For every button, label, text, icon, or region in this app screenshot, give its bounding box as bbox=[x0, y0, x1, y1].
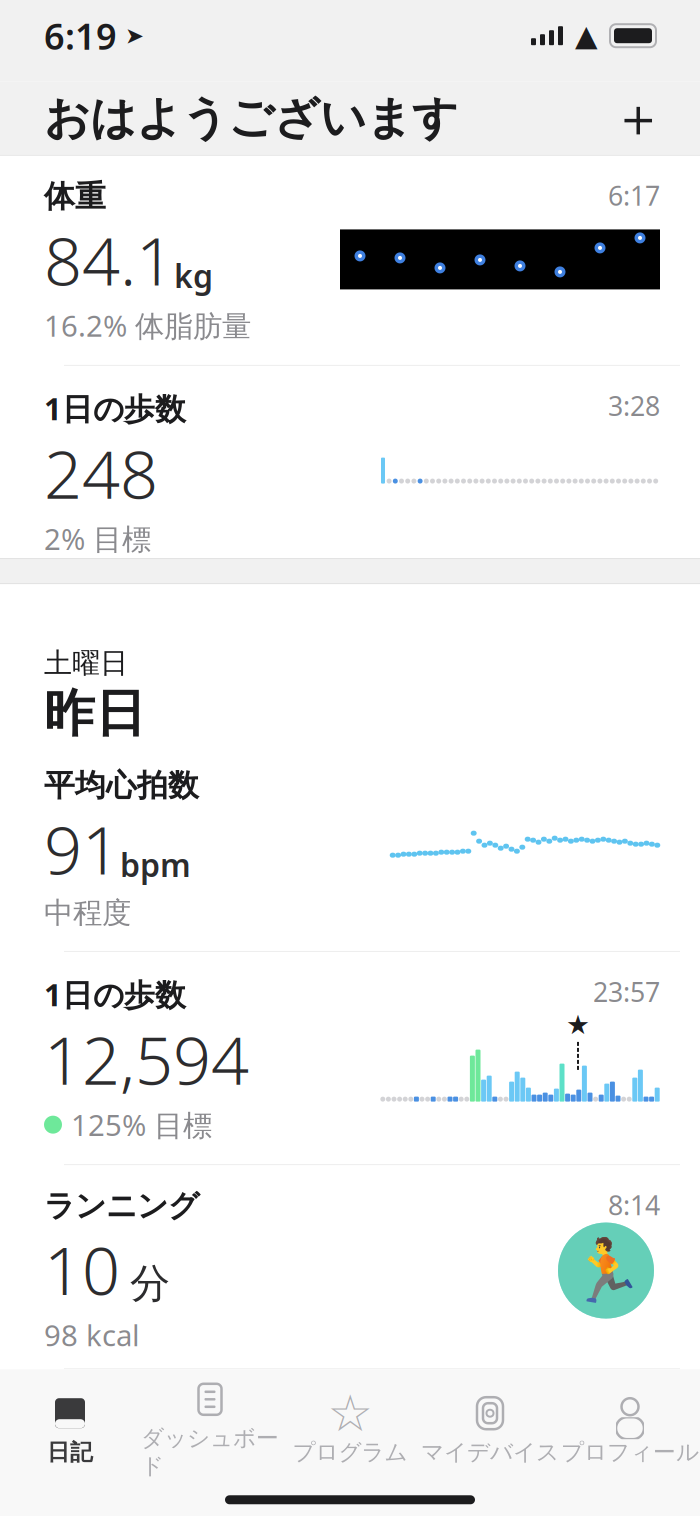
staticText: ダッシュボード bbox=[141, 1424, 279, 1480]
staticText: 中程度 bbox=[44, 895, 131, 931]
button[interactable]: プロフィール bbox=[560, 1383, 700, 1474]
staticText: bpm bbox=[120, 843, 191, 886]
staticText: kg bbox=[174, 254, 213, 297]
staticText: 分 bbox=[130, 1259, 170, 1308]
button[interactable]: マイデバイス bbox=[420, 1383, 560, 1474]
staticText: 1日の歩数 bbox=[44, 974, 186, 1015]
staticText: 125% 目標 bbox=[71, 1105, 212, 1144]
button[interactable]: ダッシュボード bbox=[140, 1369, 280, 1488]
staticText: 98 kcal bbox=[44, 1315, 140, 1354]
staticText: 🏃 bbox=[568, 1235, 644, 1306]
staticText: 91 bbox=[44, 804, 120, 893]
staticText: 3:28 bbox=[608, 388, 660, 423]
staticText: 6:17 bbox=[608, 178, 660, 213]
button[interactable]: 平均心拍数 bbox=[0, 745, 700, 952]
staticText: ★ bbox=[566, 1010, 590, 1040]
button[interactable]: 体重 bbox=[0, 156, 700, 366]
button[interactable]: ランニング bbox=[0, 1165, 700, 1369]
staticText: ランニング bbox=[44, 1187, 199, 1225]
staticText: 84.1 bbox=[44, 215, 174, 304]
button[interactable]: ☆ bbox=[280, 1383, 420, 1474]
button[interactable]: 日記 bbox=[0, 1383, 140, 1474]
staticText: 昨日 bbox=[44, 682, 146, 745]
staticText: ＋ bbox=[611, 85, 664, 151]
staticText: 16.2% 体脂肪量 bbox=[44, 306, 251, 345]
staticText: おはようございます bbox=[44, 90, 458, 146]
staticText: マイデバイス bbox=[421, 1438, 559, 1466]
staticText: 平均心拍数 bbox=[44, 767, 199, 804]
staticText: ▲ bbox=[575, 19, 598, 52]
staticText: 8:14 bbox=[608, 1187, 660, 1222]
staticText: 23:57 bbox=[593, 974, 660, 1009]
staticText: 体重 bbox=[44, 178, 106, 215]
staticText: 12,594 bbox=[44, 1015, 249, 1103]
staticText: 1日の歩数 bbox=[44, 388, 186, 429]
button[interactable]: 追加 bbox=[610, 90, 666, 146]
staticText: 土曜日 bbox=[44, 646, 128, 680]
staticText: ➤ bbox=[125, 23, 144, 48]
staticText: プログラム bbox=[292, 1438, 407, 1466]
staticText: プロフィール bbox=[561, 1438, 699, 1466]
staticText: 10 bbox=[44, 1225, 120, 1313]
button[interactable]: 1日の歩数 bbox=[0, 952, 700, 1165]
staticText: 248 bbox=[44, 429, 158, 517]
button[interactable]: 1日の歩数 bbox=[0, 366, 700, 558]
staticText: 6:19 bbox=[44, 12, 117, 60]
staticText: ☆ bbox=[327, 1384, 372, 1442]
staticText: 日記 bbox=[47, 1438, 93, 1466]
staticText: 2% 目標 bbox=[44, 519, 151, 558]
